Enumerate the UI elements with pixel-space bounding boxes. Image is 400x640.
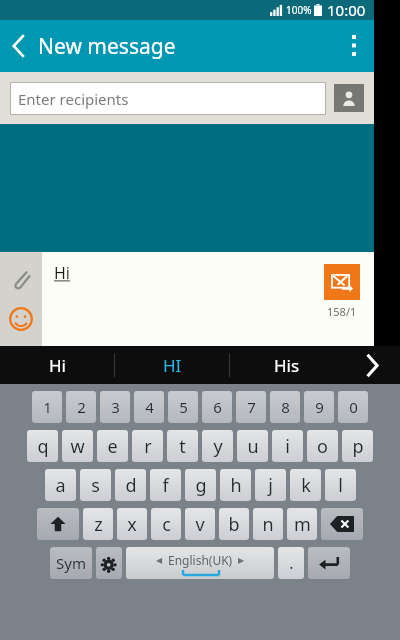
staticText: ▶ <box>238 556 245 565</box>
staticText: m <box>294 512 311 537</box>
staticText: s <box>91 473 100 498</box>
staticText: z <box>94 512 103 537</box>
button[interactable]: b <box>219 508 249 540</box>
staticText: 7 <box>247 397 256 417</box>
button[interactable]: x <box>117 508 147 540</box>
staticText: English(UK) <box>168 552 233 568</box>
staticText: g <box>195 473 207 498</box>
button[interactable]: More suggestions <box>344 346 400 384</box>
staticText: 6 <box>213 397 222 417</box>
staticText: 1 <box>43 397 52 417</box>
staticText: h <box>230 473 242 498</box>
staticText: l <box>338 473 343 498</box>
staticText: Galaxy Note Edge <box>349 347 400 373</box>
button[interactable]: s <box>80 469 111 501</box>
staticText: 8 <box>281 397 290 417</box>
staticText: 100% <box>286 3 312 17</box>
staticText: Enter recipients <box>18 89 129 109</box>
staticText: Hi <box>54 262 70 284</box>
button[interactable]: 2 <box>66 391 96 423</box>
button[interactable]: Hi <box>0 346 114 384</box>
button[interactable]: u <box>237 430 268 462</box>
staticText: c <box>162 512 171 537</box>
button[interactable]: o <box>307 430 338 462</box>
staticText: y <box>213 434 223 459</box>
button[interactable]: j <box>255 469 286 501</box>
button[interactable]: 5 <box>168 391 198 423</box>
staticText: Hi <box>49 354 66 377</box>
button[interactable]: h <box>220 469 251 501</box>
button[interactable]: 9 <box>304 391 334 423</box>
staticText: p <box>352 434 364 459</box>
button[interactable]: n <box>253 508 283 540</box>
button[interactable]: Back <box>0 20 38 72</box>
staticText: 3 <box>111 397 120 417</box>
staticText: x <box>127 512 137 537</box>
staticText: HI <box>163 354 182 377</box>
button[interactable]: . <box>278 547 304 579</box>
button[interactable]: r <box>132 430 163 462</box>
button[interactable]: Sym <box>50 547 92 579</box>
button[interactable]: HI <box>115 346 229 384</box>
staticText: w <box>70 434 85 459</box>
button[interactable]: Send message <box>324 264 360 300</box>
staticText: ◀ <box>156 556 163 565</box>
button[interactable]: c <box>151 508 181 540</box>
button[interactable]: f <box>150 469 181 501</box>
button[interactable]: q <box>27 430 58 462</box>
button[interactable]: Space, English UK <box>126 547 274 579</box>
staticText: 4 <box>145 397 154 417</box>
staticText: Sym <box>56 553 86 573</box>
button[interactable]: Enter <box>308 547 350 579</box>
staticText: u <box>247 434 259 459</box>
button[interactable]: i <box>272 430 303 462</box>
button[interactable]: w <box>62 430 93 462</box>
button[interactable]: g <box>185 469 216 501</box>
button[interactable]: k <box>290 469 321 501</box>
button[interactable]: z <box>83 508 113 540</box>
staticText: j <box>268 473 273 498</box>
staticText: r <box>144 434 152 459</box>
staticText: n <box>262 512 274 537</box>
staticText: 5 <box>179 397 188 417</box>
button[interactable]: m <box>287 508 317 540</box>
staticText: d <box>125 473 137 498</box>
button[interactable]: Enter recipients <box>10 82 326 115</box>
staticText: e <box>107 434 118 459</box>
button[interactable]: His <box>230 346 344 384</box>
staticText: a <box>55 473 66 498</box>
button[interactable]: Backspace <box>321 508 363 540</box>
staticText: 2 <box>77 397 86 417</box>
button[interactable]: 3 <box>100 391 130 423</box>
staticText: i <box>285 434 290 459</box>
button[interactable]: 1 <box>32 391 62 423</box>
button[interactable]: More options <box>334 20 374 72</box>
button[interactable]: p <box>342 430 373 462</box>
button[interactable]: l <box>325 469 356 501</box>
staticText: 9 <box>315 397 324 417</box>
button[interactable]: 7 <box>236 391 266 423</box>
button[interactable]: Add contact <box>334 84 364 112</box>
staticText: v <box>195 512 205 537</box>
button[interactable]: 6 <box>202 391 232 423</box>
staticText: His <box>274 354 300 377</box>
button[interactable]: Emoticons <box>4 302 38 336</box>
staticText: b <box>228 512 240 537</box>
button[interactable]: 0 <box>338 391 368 423</box>
button[interactable]: 8 <box>270 391 300 423</box>
button[interactable]: 4 <box>134 391 164 423</box>
button[interactable]: d <box>115 469 146 501</box>
staticText: k <box>301 473 311 498</box>
button[interactable]: y <box>202 430 233 462</box>
button[interactable]: Shift <box>37 508 79 540</box>
staticText: 158/1 <box>327 304 357 319</box>
button[interactable]: a <box>45 469 76 501</box>
button[interactable]: v <box>185 508 215 540</box>
staticText: q <box>37 434 49 459</box>
button[interactable]: Settings <box>96 547 122 579</box>
staticText: f <box>162 473 169 498</box>
button[interactable]: t <box>167 430 198 462</box>
staticText: 0 <box>349 397 358 417</box>
button[interactable]: e <box>97 430 128 462</box>
button[interactable]: Attach <box>4 262 38 296</box>
